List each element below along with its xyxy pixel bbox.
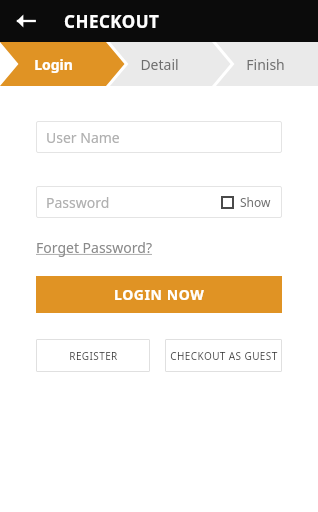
button[interactable]: CHECKOUT AS GUEST [165,339,282,372]
button[interactable]: Show [220,194,272,210]
staticText: CHECKOUT [64,10,160,33]
staticText: Password [46,193,220,212]
staticText: REGISTER [69,349,118,363]
staticText: Forget Password? [36,238,152,257]
staticText: User Name [46,128,272,147]
button[interactable]: Finish [212,42,318,86]
staticText: Detail [140,55,179,74]
button[interactable]: REGISTER [36,339,150,372]
staticText: Login [34,55,73,74]
staticText: CHECKOUT AS GUEST [170,349,278,363]
staticText: Show [240,194,271,210]
button[interactable]: Back [8,3,44,39]
staticText: Finish [246,55,285,74]
button[interactable]: Detail [106,42,212,86]
button[interactable]: Forget Password? [36,236,152,259]
button[interactable]: LOGIN NOW [36,276,282,313]
staticText: LOGIN NOW [114,285,205,304]
button[interactable]: User Name [36,121,282,153]
button[interactable]: Login [0,42,106,86]
button[interactable]: Password [36,186,282,218]
